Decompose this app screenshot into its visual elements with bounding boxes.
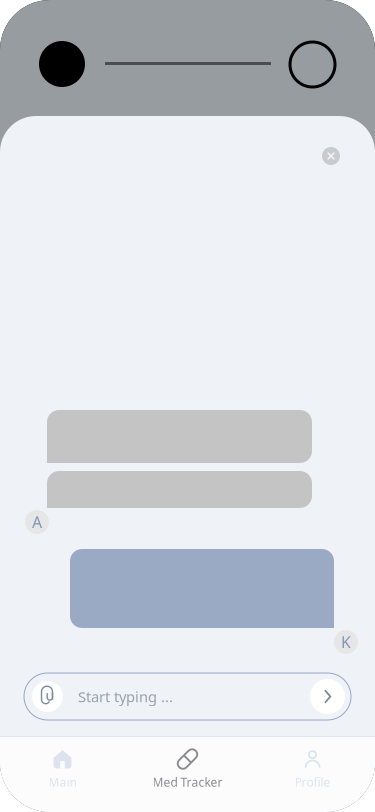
staticText: K [341,631,351,653]
button[interactable]: Close [322,147,340,165]
staticText: Med Tracker [152,774,222,790]
button[interactable]: Attach file [32,681,63,712]
staticText: A [32,511,42,533]
staticText: Start typing ... [78,687,173,706]
button[interactable]: Med Tracker [125,737,250,812]
staticText: Main [48,774,76,790]
button[interactable]: Send [310,679,345,714]
button[interactable]: Profile [250,737,375,812]
button[interactable]: Main [0,737,125,812]
staticText: Profile [294,774,330,790]
